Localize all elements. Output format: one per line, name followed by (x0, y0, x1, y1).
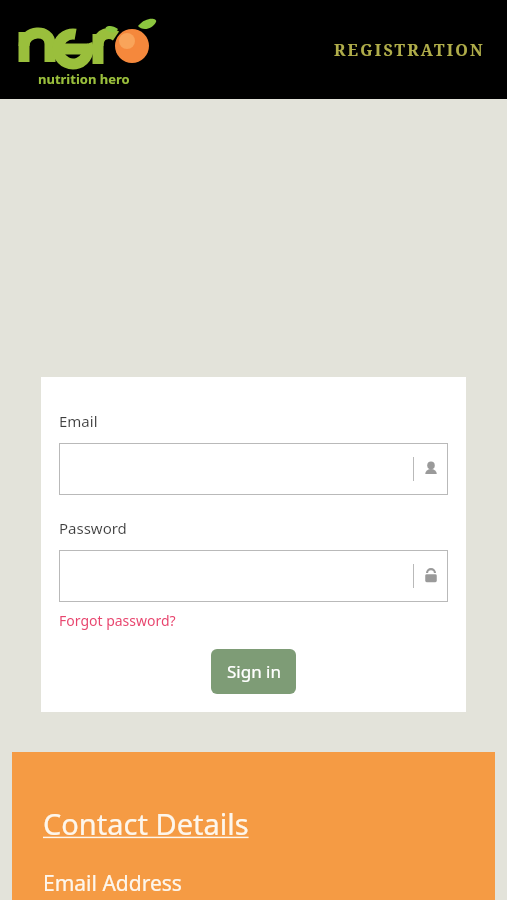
button[interactable]: Email input (59, 443, 448, 495)
staticText: Email (59, 411, 98, 431)
button[interactable]: Password input (59, 550, 448, 602)
button[interactable]: Sign in (211, 649, 296, 694)
button[interactable]: nero nutrition hero logo (14, 12, 154, 88)
staticText: Sign in (227, 660, 281, 683)
button[interactable]: Contact Details (43, 804, 249, 843)
button[interactable]: Forgot password? (59, 611, 176, 630)
staticText: Email Address (43, 869, 182, 898)
staticText: Password (59, 518, 127, 538)
staticText: nutrition hero (38, 70, 130, 88)
button[interactable]: REGISTRATION (334, 39, 485, 61)
